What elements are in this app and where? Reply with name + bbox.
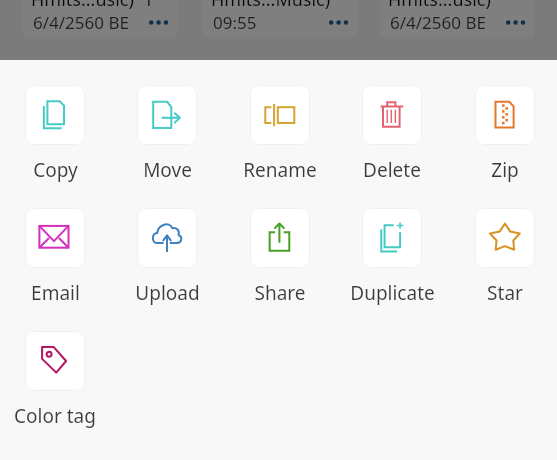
staticText: Zip	[491, 157, 519, 183]
staticText: Copy	[33, 157, 78, 183]
staticText: Share	[254, 280, 306, 306]
staticText: 09:55	[213, 11, 257, 34]
staticText: Email	[31, 280, 80, 306]
button[interactable]: Zip	[451, 85, 557, 183]
staticText: Hmits...usic)	[388, 0, 491, 12]
button[interactable]: Color tag	[1, 331, 109, 429]
staticText: Duplicate	[350, 280, 435, 306]
button[interactable]: Email	[1, 208, 109, 306]
staticText: Rename	[243, 157, 317, 183]
staticText: Star	[487, 280, 523, 306]
staticText: Hmits...usic) 1	[31, 0, 154, 12]
staticText: Move	[143, 157, 192, 183]
staticText: 6/4/2560 BE	[33, 11, 129, 34]
button[interactable]: Share	[226, 208, 334, 306]
button[interactable]: Upload	[113, 208, 221, 306]
staticText: 6/4/2560 BE	[390, 11, 486, 34]
button[interactable]: Duplicate	[338, 208, 446, 306]
button[interactable]: Rename	[226, 85, 334, 183]
button[interactable]: Copy	[1, 85, 109, 183]
staticText: Hmits...Music)	[211, 0, 331, 12]
button[interactable]: Delete	[338, 85, 446, 183]
staticText: Color tag	[14, 403, 96, 429]
staticText: Upload	[135, 280, 200, 306]
button[interactable]: Move	[113, 85, 221, 183]
staticText: Delete	[363, 157, 421, 183]
button[interactable]: Star	[451, 208, 557, 306]
